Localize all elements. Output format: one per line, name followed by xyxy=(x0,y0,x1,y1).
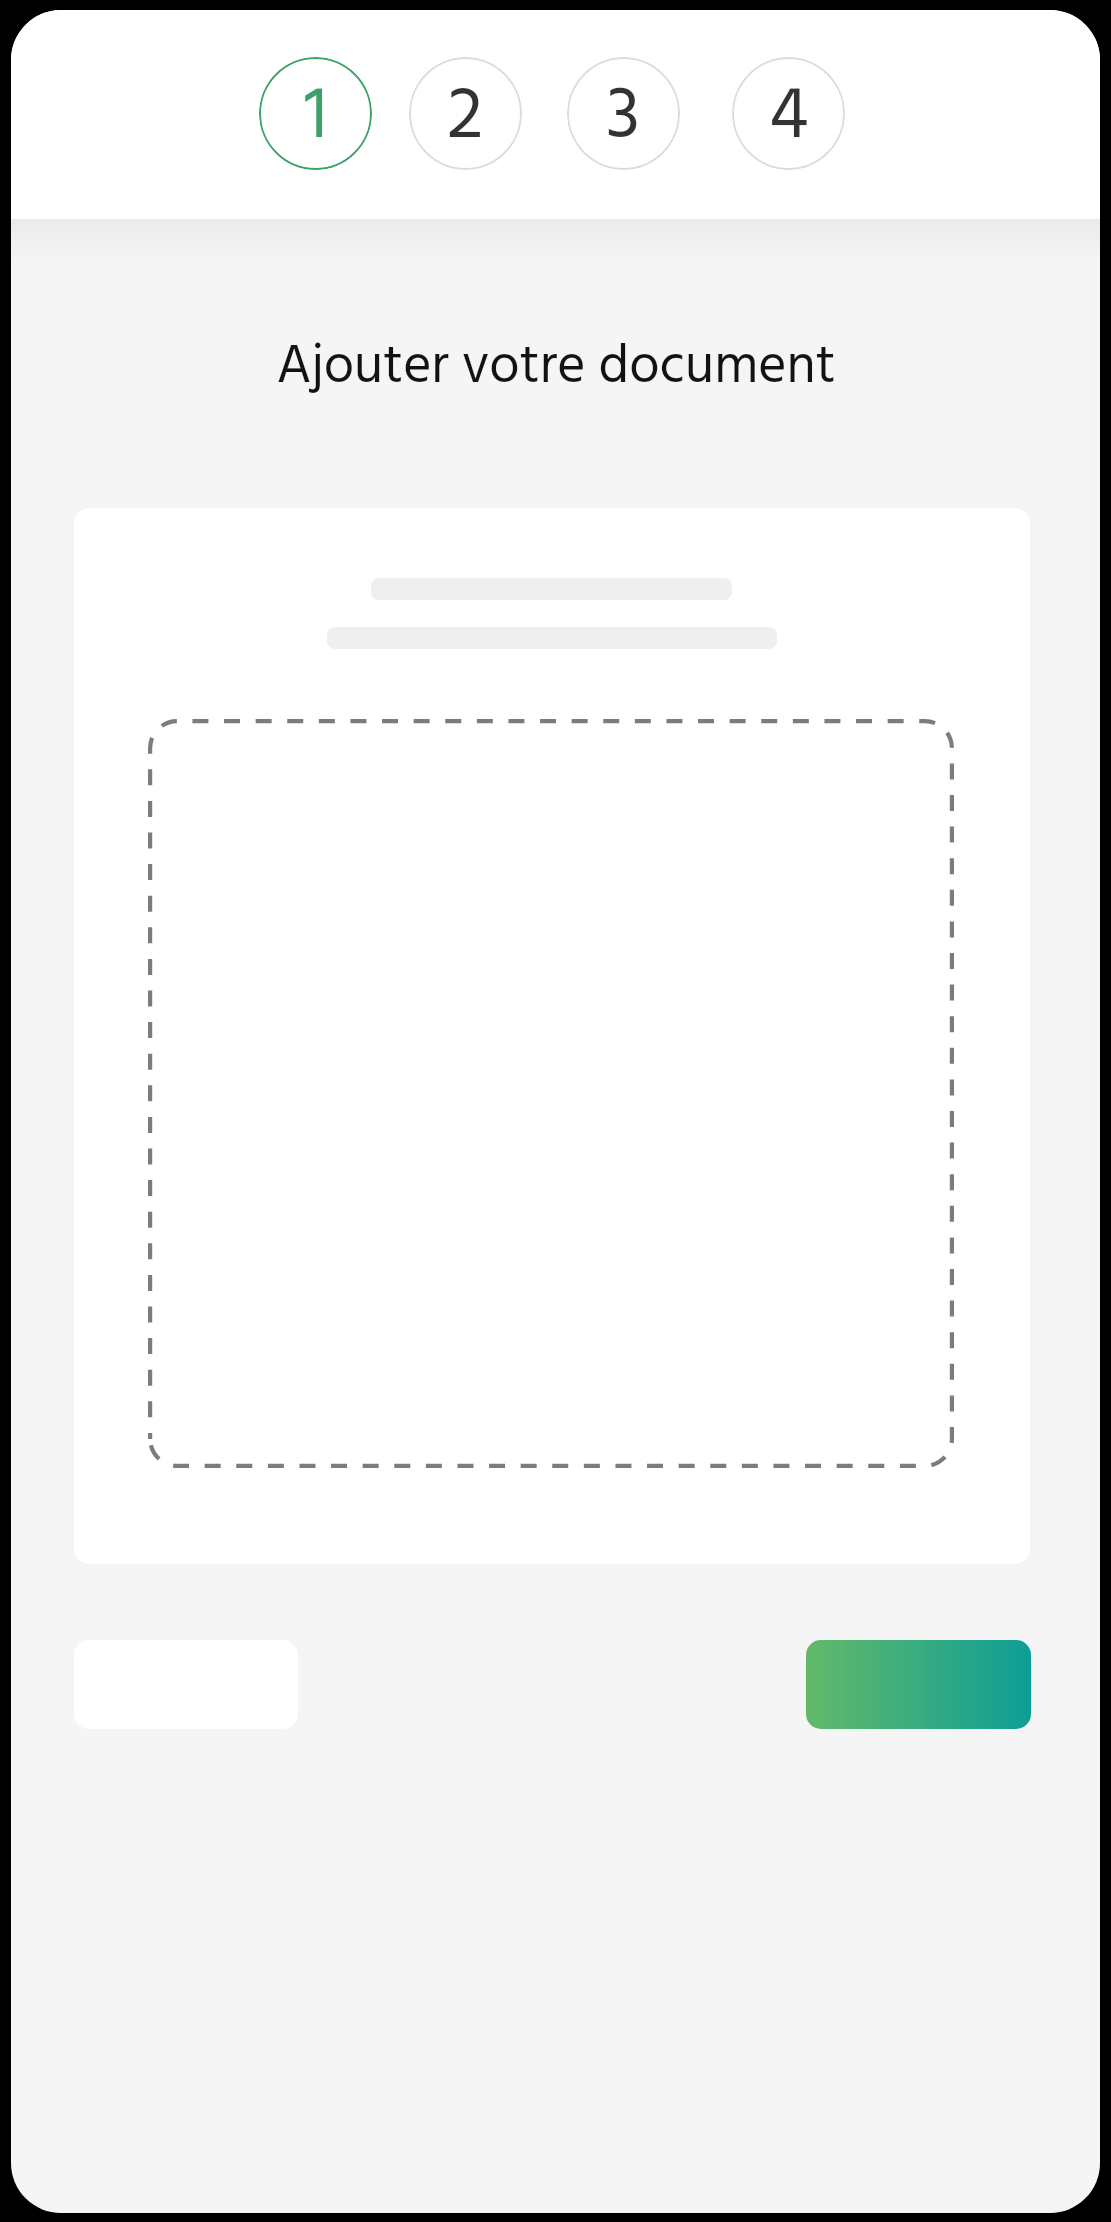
staticText: 1 xyxy=(304,60,328,170)
button[interactable]: Suivant xyxy=(806,1640,1031,1729)
staticText: 3 xyxy=(606,60,641,170)
button[interactable]: Etape 4 xyxy=(732,57,845,170)
button[interactable]: Etape 1 xyxy=(259,57,372,170)
button[interactable] xyxy=(74,508,1030,1564)
staticText: 2 xyxy=(447,60,484,170)
staticText: 4 xyxy=(769,60,809,170)
button[interactable]: Etape 2 xyxy=(409,57,522,170)
button[interactable]: Etape 3 xyxy=(567,57,680,170)
staticText: Ajouter votre document xyxy=(276,325,836,395)
